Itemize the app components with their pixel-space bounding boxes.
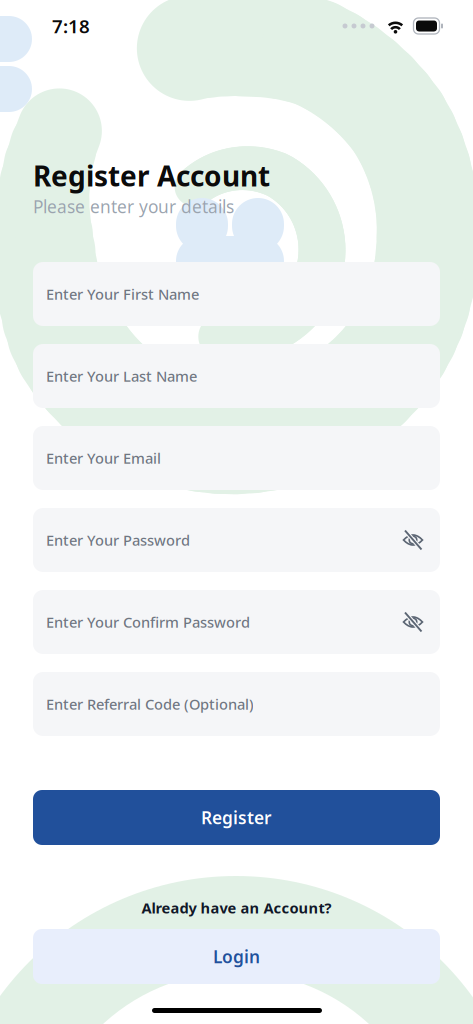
staticText: Enter Your Last Name — [46, 366, 197, 386]
staticText: Register Account — [33, 157, 270, 194]
button[interactable]: Show password — [402, 529, 424, 551]
staticText: Please enter your details — [33, 195, 234, 218]
staticText: Login — [213, 945, 260, 968]
button[interactable]: Show password — [402, 611, 424, 633]
staticText: 7:18 — [52, 14, 90, 38]
button[interactable]: Register — [33, 790, 440, 845]
staticText: Enter Your First Name — [46, 284, 199, 304]
button[interactable]: Login — [33, 929, 440, 984]
staticText: Register — [201, 806, 272, 829]
staticText: Already have an Account? — [141, 898, 331, 917]
staticText: Enter Your Confirm Password — [46, 612, 250, 632]
staticText: Enter Your Password — [46, 530, 190, 550]
staticText: Enter Referral Code (Optional) — [46, 694, 254, 714]
staticText: Enter Your Email — [46, 448, 161, 468]
